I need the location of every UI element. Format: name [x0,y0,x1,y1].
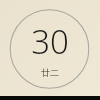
staticText: 廿二 [41,67,59,78]
button[interactable]: Date, 30, 廿二 [0,0,100,100]
staticText: 30 [31,19,69,64]
